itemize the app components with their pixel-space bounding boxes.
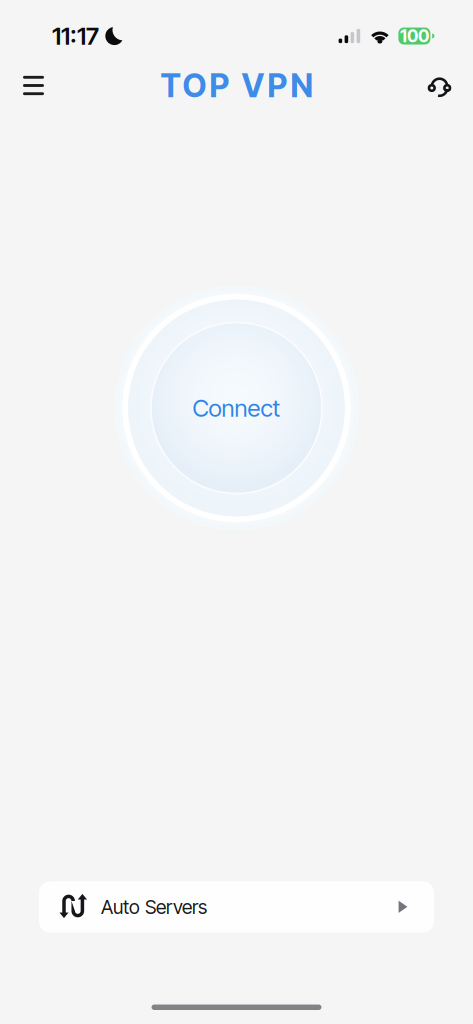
staticText: 100	[400, 25, 429, 46]
button[interactable]: Auto Servers	[39, 881, 434, 932]
staticText: 11:17	[52, 21, 99, 50]
button[interactable]: Connect	[107, 279, 365, 537]
staticText: Auto Servers	[101, 895, 207, 919]
staticText: TOP VPN	[160, 66, 312, 105]
button[interactable]: Menu	[11, 63, 56, 108]
button[interactable]: Support	[417, 63, 462, 108]
staticText: Connect	[192, 393, 280, 422]
